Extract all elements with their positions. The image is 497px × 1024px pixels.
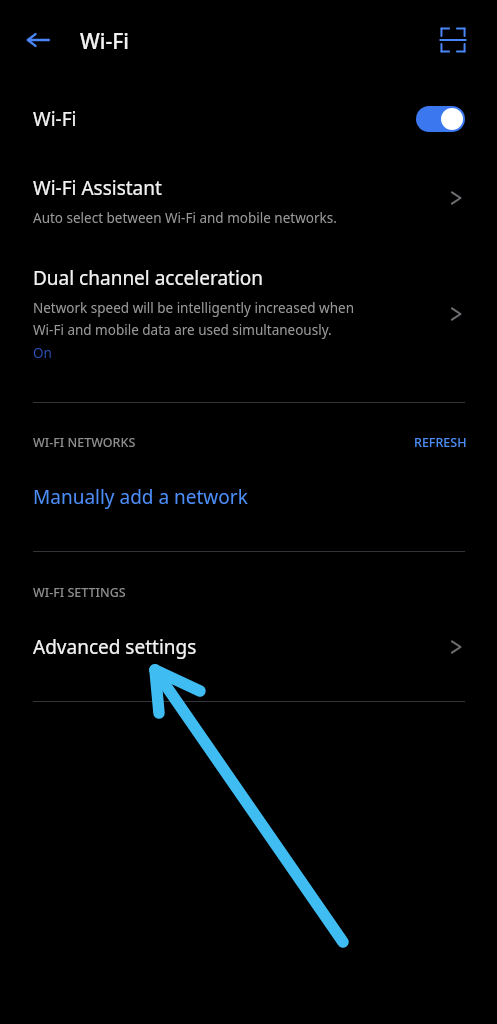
staticText: WI-FI SETTINGS [33, 584, 126, 601]
staticText: Wi-Fi Assistant [33, 175, 162, 201]
staticText: On [33, 344, 52, 362]
staticText: Wi-Fi [33, 106, 77, 132]
staticText: Wi-Fi [80, 27, 129, 56]
staticText: REFRESH [414, 434, 467, 451]
staticText: Wi-Fi and mobile data are used simultane… [33, 321, 332, 339]
button[interactable]: Wi-Fi Assistant [0, 166, 497, 238]
button[interactable]: REFRESH [414, 434, 467, 451]
button[interactable]: Dual channel acceleration [0, 256, 497, 374]
staticText: Dual channel acceleration [33, 265, 264, 291]
staticText: Auto select between Wi-Fi and mobile net… [33, 209, 337, 227]
button[interactable]: Back [20, 22, 56, 58]
button[interactable]: Advanced settings [0, 622, 497, 672]
button[interactable]: Wi-Fi [0, 92, 497, 146]
staticText: Network speed will be intelligently incr… [33, 299, 355, 317]
staticText: Manually add a network [33, 484, 248, 510]
button[interactable]: Scan QR code [436, 23, 470, 57]
staticText: Advanced settings [33, 634, 197, 660]
staticText: WI-FI NETWORKS [33, 434, 136, 451]
button[interactable]: Manually add a network [0, 472, 497, 522]
